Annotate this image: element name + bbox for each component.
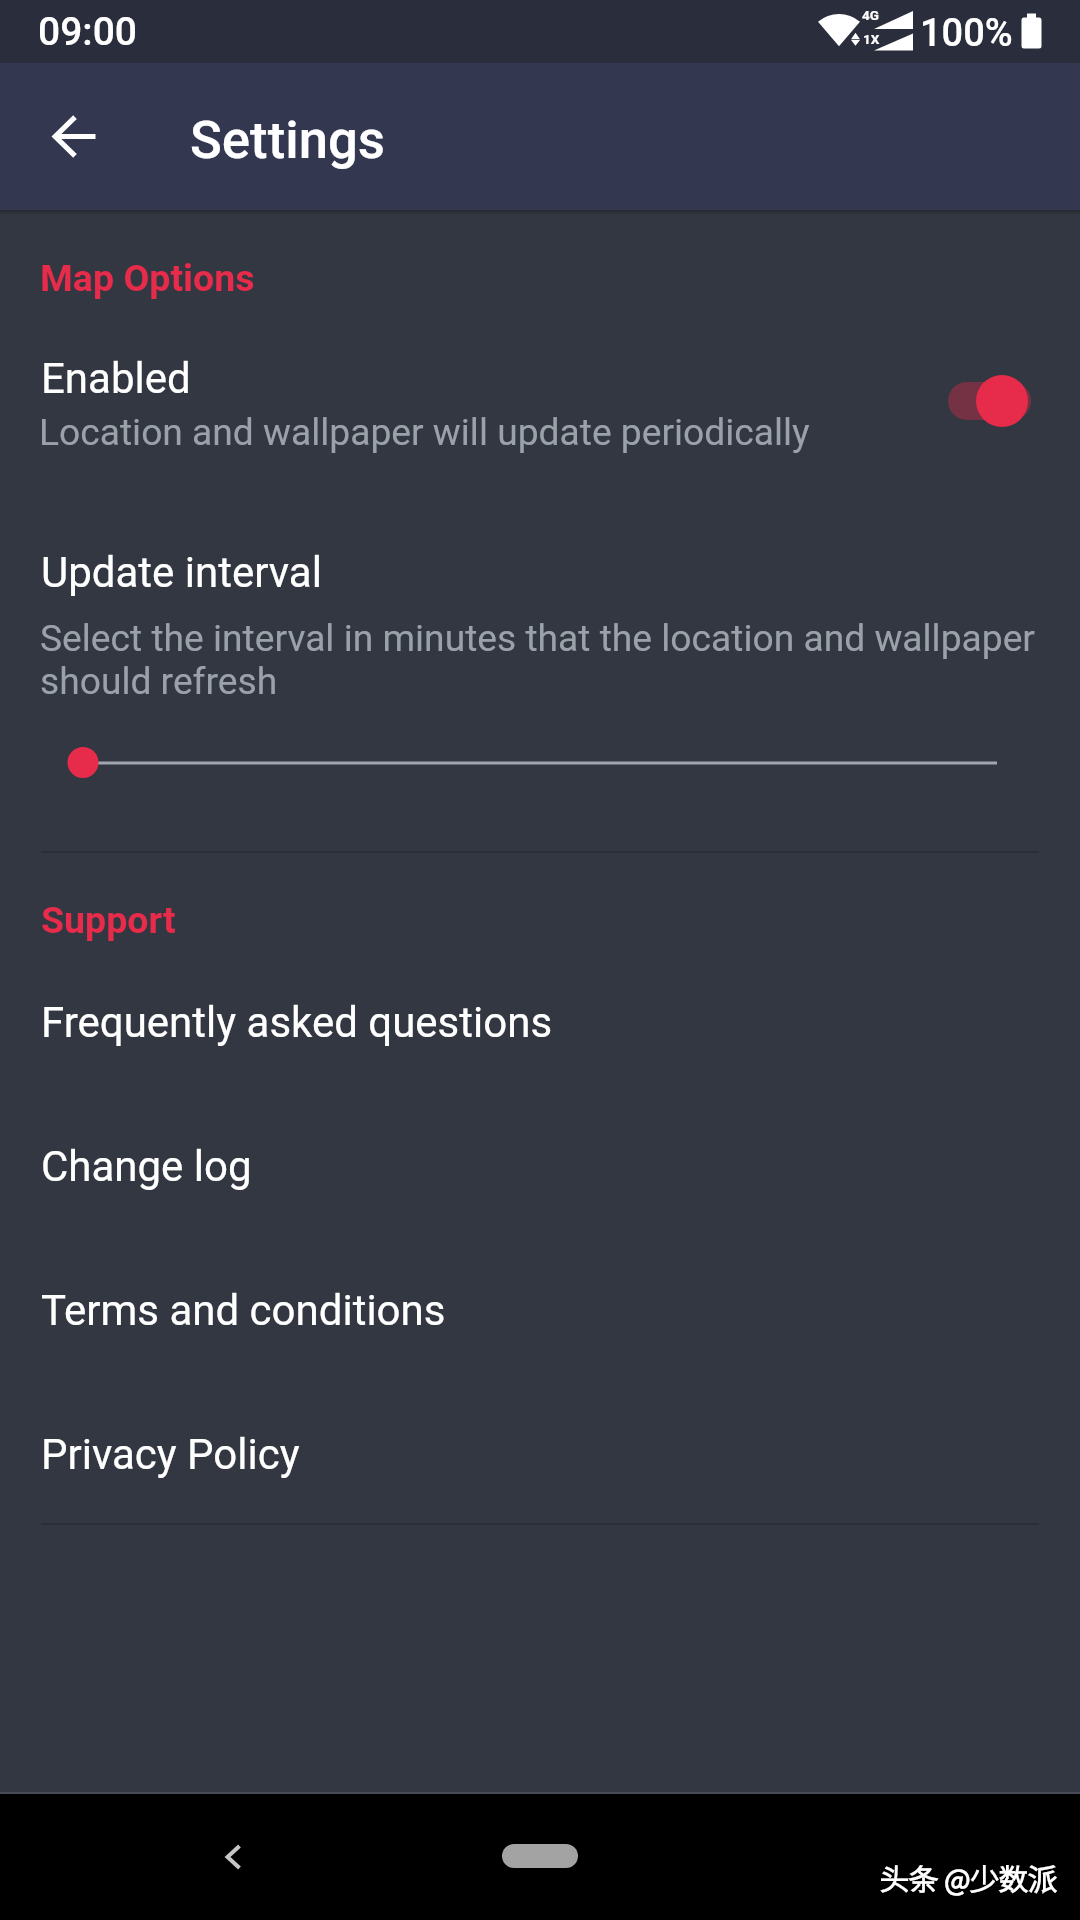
- staticText: Support: [41, 898, 176, 942]
- button[interactable]: Update interval slider: [40, 720, 1040, 806]
- staticText: should refresh: [40, 659, 278, 703]
- staticText: Terms and conditions: [41, 1286, 446, 1335]
- button[interactable]: Frequently asked questions: [0, 965, 1080, 1109]
- staticText: Enabled: [41, 354, 191, 403]
- staticText: Privacy Policy: [41, 1430, 300, 1479]
- staticText: Select the interval in minutes that the …: [40, 616, 1035, 660]
- staticText: Map Options: [40, 256, 255, 300]
- staticText: 头条 @少数派: [880, 1856, 1058, 1898]
- button[interactable]: Enabled, on: [930, 360, 1050, 442]
- staticText: 头条 @少数派: [880, 1856, 1058, 1898]
- button[interactable]: Terms and conditions: [0, 1253, 1080, 1397]
- staticText: 09:00: [38, 9, 138, 55]
- button[interactable]: Home: [502, 1844, 578, 1868]
- staticText: 1X: [863, 31, 880, 47]
- staticText: Update interval: [41, 548, 322, 597]
- staticText: Location and wallpaper will update perio…: [39, 410, 810, 454]
- staticText: Frequently asked questions: [41, 998, 553, 1047]
- staticText: Settings: [190, 109, 386, 171]
- staticText: Change log: [41, 1142, 252, 1191]
- button[interactable]: Update interval: [0, 500, 1080, 830]
- staticText: 100%: [920, 11, 1013, 56]
- button[interactable]: Navigate up: [42, 105, 105, 168]
- button[interactable]: Enabled: [0, 318, 1080, 483]
- button[interactable]: Back: [195, 1817, 275, 1897]
- button[interactable]: Change log: [0, 1109, 1080, 1253]
- button[interactable]: Privacy Policy: [0, 1397, 1080, 1541]
- staticText: 4G: [862, 7, 879, 23]
